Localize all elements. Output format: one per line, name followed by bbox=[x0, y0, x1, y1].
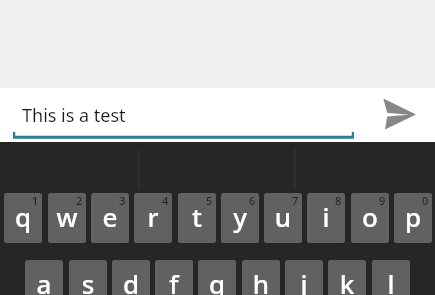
staticText: e bbox=[91, 199, 129, 234]
button[interactable]: e bbox=[91, 193, 129, 243]
button[interactable]: t bbox=[178, 193, 216, 243]
button[interactable]: s bbox=[69, 260, 107, 295]
staticText: f bbox=[155, 266, 193, 295]
staticText: d bbox=[112, 266, 150, 295]
staticText: a bbox=[25, 266, 63, 295]
staticText: i bbox=[307, 199, 345, 234]
staticText: q bbox=[4, 199, 42, 234]
button[interactable]: p bbox=[394, 193, 432, 243]
button[interactable]: i bbox=[307, 193, 345, 243]
staticText: t bbox=[178, 199, 216, 234]
staticText: l bbox=[372, 266, 410, 295]
staticText: u bbox=[264, 199, 302, 234]
button[interactable]: j bbox=[285, 260, 323, 295]
button[interactable]: k bbox=[328, 260, 366, 295]
button[interactable]: d bbox=[112, 260, 150, 295]
button[interactable]: w bbox=[48, 193, 86, 243]
staticText: 2 bbox=[76, 193, 83, 208]
staticText: p bbox=[394, 199, 432, 234]
staticText: 6 bbox=[249, 193, 256, 208]
staticText: 8 bbox=[335, 193, 342, 208]
staticText: h bbox=[242, 266, 280, 295]
button[interactable]: o bbox=[351, 193, 389, 243]
staticText: j bbox=[285, 266, 323, 295]
staticText: 5 bbox=[206, 193, 213, 208]
staticText: g bbox=[198, 266, 236, 295]
staticText: s bbox=[69, 266, 107, 295]
button[interactable]: g bbox=[198, 260, 236, 295]
button[interactable]: Send bbox=[371, 90, 427, 140]
staticText: 4 bbox=[162, 193, 169, 208]
button[interactable]: r bbox=[134, 193, 172, 243]
staticText: o bbox=[351, 199, 389, 234]
staticText: 9 bbox=[379, 193, 386, 208]
button[interactable]: y bbox=[221, 193, 259, 243]
button[interactable]: h bbox=[242, 260, 280, 295]
staticText: r bbox=[134, 199, 172, 234]
button[interactable]: a bbox=[25, 260, 63, 295]
staticText: k bbox=[328, 266, 366, 295]
button[interactable]: u bbox=[264, 193, 302, 243]
staticText: w bbox=[48, 199, 86, 234]
button[interactable]: l bbox=[372, 260, 410, 295]
staticText: 0 bbox=[422, 193, 429, 208]
button[interactable]: f bbox=[155, 260, 193, 295]
staticText: y bbox=[221, 199, 259, 234]
staticText: 1 bbox=[32, 193, 39, 208]
button[interactable]: q bbox=[4, 193, 42, 243]
staticText: This is a test bbox=[22, 103, 126, 128]
staticText: 3 bbox=[119, 193, 126, 208]
staticText: 7 bbox=[292, 193, 299, 208]
